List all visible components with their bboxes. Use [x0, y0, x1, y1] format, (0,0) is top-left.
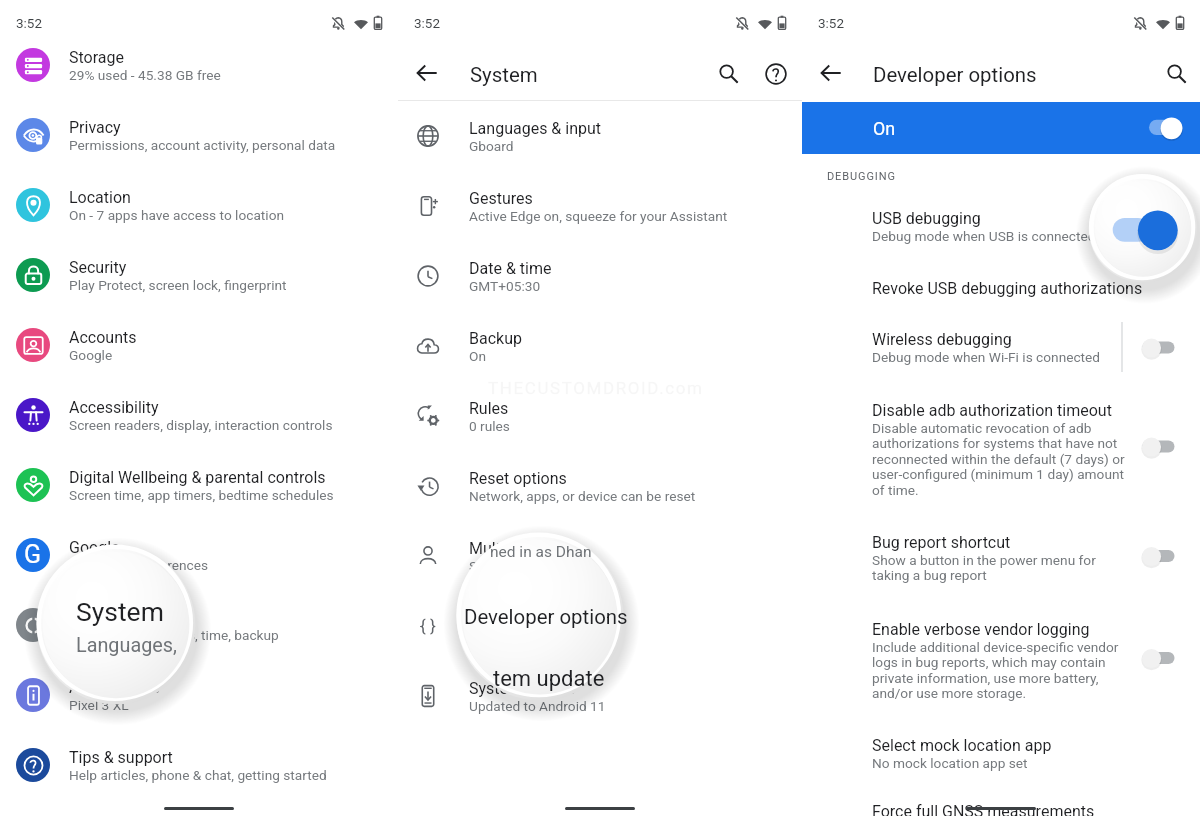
staticText: Help articles, phone & chat, getting sta… [69, 767, 327, 783]
button[interactable]: Accounts [0, 310, 398, 380]
staticText: Screen readers, display, interaction con… [69, 417, 333, 433]
staticText: { } [420, 616, 436, 636]
staticText: Updated to Android 11 [469, 698, 606, 714]
button[interactable]: Digital Wellbeing & parental controls [0, 450, 398, 520]
button[interactable]: Enable verbose vendor logging [802, 607, 1200, 705]
button[interactable]: G [0, 520, 398, 590]
button[interactable]: Location [0, 170, 398, 240]
staticText: Debug mode when Wi-Fi is connected [872, 349, 1101, 365]
staticText: 0 rules [469, 418, 510, 434]
staticText: Network, apps, or device can be reset [469, 488, 696, 504]
staticText: Gboard [469, 138, 514, 154]
staticText: Developer options [464, 605, 628, 629]
staticText: ned in as Dhan [490, 543, 592, 561]
button[interactable]: Toggle enable verbose vendor logging [1132, 644, 1186, 672]
button[interactable]: Tips & support [0, 730, 398, 800]
staticText: Enable verbose vendor logging [872, 620, 1090, 639]
staticText: Wireless debugging [872, 330, 1012, 349]
button[interactable]: Help [762, 60, 790, 88]
staticText: System update [469, 679, 576, 698]
staticText: Languages, [76, 634, 177, 657]
button[interactable]: Date & time [398, 241, 802, 311]
staticText: USB debugging [872, 209, 981, 228]
button[interactable]: Languages & input [398, 101, 802, 171]
staticText: logs in bug reports, which may contain [872, 654, 1106, 670]
button[interactable]: Accessibility [0, 380, 398, 450]
staticText: THECUSTOMDROID.com [488, 378, 704, 398]
staticText: Play Protect, screen lock, fingerprint [69, 277, 287, 293]
button[interactable]: System [0, 590, 398, 660]
button[interactable]: Toggle wireless debugging [1132, 334, 1186, 362]
staticText: Revoke USB debugging authorizations [872, 279, 1143, 298]
staticText: Languages & input [469, 119, 602, 138]
button[interactable]: Back [817, 59, 845, 87]
staticText: 3:52 [16, 15, 43, 31]
staticText: Pixel 3 XL [69, 697, 129, 713]
staticText: Security [69, 258, 127, 277]
staticText: Location [69, 188, 131, 207]
staticText: On - 7 apps have access to location [69, 207, 285, 223]
button[interactable]: Select mock location app [802, 723, 1200, 775]
button[interactable]: Search [1162, 59, 1190, 87]
staticText: Google [69, 538, 120, 557]
button[interactable]: Security [0, 240, 398, 310]
staticText: Reset options [469, 469, 567, 488]
button[interactable]: Storage [0, 30, 398, 100]
staticText: About phone [69, 678, 160, 697]
staticText: Force full GNSS measurements [872, 802, 1095, 816]
staticText: Debug mode when USB is connected [872, 228, 1096, 244]
button[interactable]: Reset options [398, 451, 802, 521]
staticText: Permissions, account activity, personal … [69, 137, 336, 153]
staticText: tem update [493, 666, 605, 692]
staticText: taking a bug report [872, 567, 987, 583]
staticText: System [470, 63, 538, 87]
staticText: Accounts [69, 328, 137, 347]
staticText: Developer options [873, 63, 1037, 87]
button[interactable]: { } [398, 591, 802, 661]
staticText: private information, use more battery, [872, 670, 1099, 686]
button[interactable]: System update [398, 661, 802, 731]
button[interactable]: Privacy [0, 100, 398, 170]
button[interactable]: Multiple users [398, 521, 802, 591]
staticText: Bug report shortcut [872, 533, 1011, 552]
button[interactable]: Toggle bug report shortcut [1132, 542, 1186, 570]
button[interactable]: Rules [398, 381, 802, 451]
staticText: GMT+05:30 [469, 278, 541, 294]
staticText: System [69, 608, 123, 627]
staticText: Services & preferences [69, 557, 209, 573]
button[interactable]: Revoke USB debugging authorizations [802, 266, 1200, 301]
staticText: Accessibility [69, 398, 159, 417]
staticText: Disable automatic revocation of adb [872, 420, 1092, 436]
staticText: On [873, 118, 896, 139]
staticText: Digital Wellbeing & parental controls [69, 468, 326, 487]
staticText: Active Edge on, squeeze for your Assista… [469, 208, 728, 224]
staticText: Storage [69, 48, 124, 67]
staticText: 29% used - 45.38 GB free [69, 67, 221, 83]
button[interactable]: Backup [398, 311, 802, 381]
button[interactable]: Gestures [398, 171, 802, 241]
button[interactable]: Toggle disable adb authorization timeout [1132, 433, 1186, 461]
staticText: Gestures [469, 189, 533, 208]
staticText: System [76, 596, 164, 627]
button[interactable]: Bug report shortcut [802, 520, 1200, 587]
staticText: Show a button in the power menu for [872, 552, 1096, 568]
button[interactable]: USB debugging [802, 196, 1200, 248]
staticText: DEBUGGING [827, 170, 896, 183]
staticText: authorizations for systems that have not [872, 435, 1118, 451]
button[interactable]: On [802, 102, 1200, 154]
button[interactable]: Back [413, 59, 441, 87]
button[interactable]: Disable adb authorization timeout [802, 388, 1200, 502]
staticText: G [24, 540, 42, 569]
button[interactable]: Wireless debugging [802, 317, 1200, 369]
staticText: 3:52 [414, 15, 441, 31]
staticText: user-configured (minimum 1 day) amount [872, 466, 1124, 482]
staticText: Google [69, 347, 113, 363]
button[interactable]: Search [714, 59, 742, 87]
staticText: Privacy [69, 118, 121, 137]
staticText: Screen time, app timers, bedtime schedul… [69, 487, 334, 503]
staticText: Rules [469, 399, 509, 418]
button[interactable]: About phone [0, 660, 398, 730]
staticText: Multiple users [469, 539, 570, 558]
button[interactable]: Toggle USB debugging [1110, 210, 1180, 250]
staticText: and/or use more storage. [872, 685, 1027, 701]
